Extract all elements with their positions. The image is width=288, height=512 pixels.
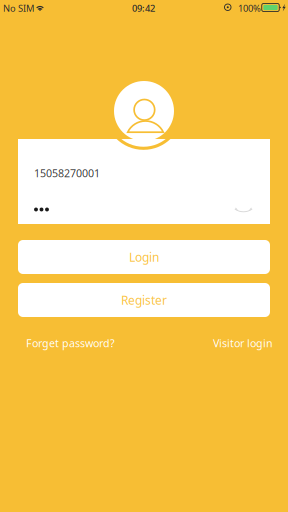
staticText: 09:42 [132, 2, 155, 14]
staticText: Register [121, 292, 167, 308]
staticText: 100% [238, 2, 261, 14]
staticText: 15058270001 [34, 166, 100, 180]
button[interactable]: Register [18, 283, 270, 317]
button[interactable]: Login [18, 240, 270, 274]
staticText: Forget password? [26, 336, 115, 350]
button[interactable] [18, 189, 270, 224]
button[interactable]: Forget password? [19, 331, 122, 355]
button[interactable]: Visitor login [206, 331, 280, 355]
button[interactable]: 15058270001 [18, 139, 270, 189]
staticText: Login [129, 249, 159, 265]
staticText: Visitor login [213, 336, 273, 350]
staticText: No SIM [3, 2, 34, 14]
